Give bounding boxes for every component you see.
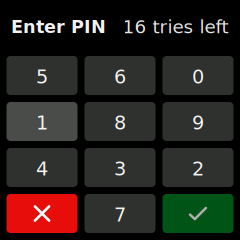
button[interactable]: 3	[84, 148, 155, 187]
staticText: 9	[192, 111, 204, 134]
button[interactable]: 5	[6, 56, 77, 95]
button[interactable]: 1	[6, 102, 77, 141]
button[interactable]: 8	[84, 102, 155, 141]
staticText: 6	[114, 65, 126, 88]
staticText: 8	[114, 111, 126, 134]
button[interactable]: 7	[84, 194, 155, 233]
staticText: Enter PIN	[11, 17, 106, 37]
button[interactable]: 4	[6, 148, 77, 187]
staticText: 0	[192, 65, 204, 88]
staticText: 2	[192, 157, 204, 180]
button[interactable]: 9	[162, 102, 233, 141]
staticText: 4	[36, 157, 48, 180]
staticText: 16 tries left	[122, 16, 228, 38]
staticText: 3	[114, 157, 126, 180]
button[interactable]: 0	[162, 56, 233, 95]
staticText: 5	[36, 65, 48, 88]
staticText: 1	[36, 111, 48, 134]
button[interactable]: Cancel	[6, 194, 77, 233]
staticText: 7	[114, 203, 126, 226]
button[interactable]: 2	[162, 148, 233, 187]
button[interactable]: Confirm	[162, 194, 233, 233]
button[interactable]: 6	[84, 56, 155, 95]
